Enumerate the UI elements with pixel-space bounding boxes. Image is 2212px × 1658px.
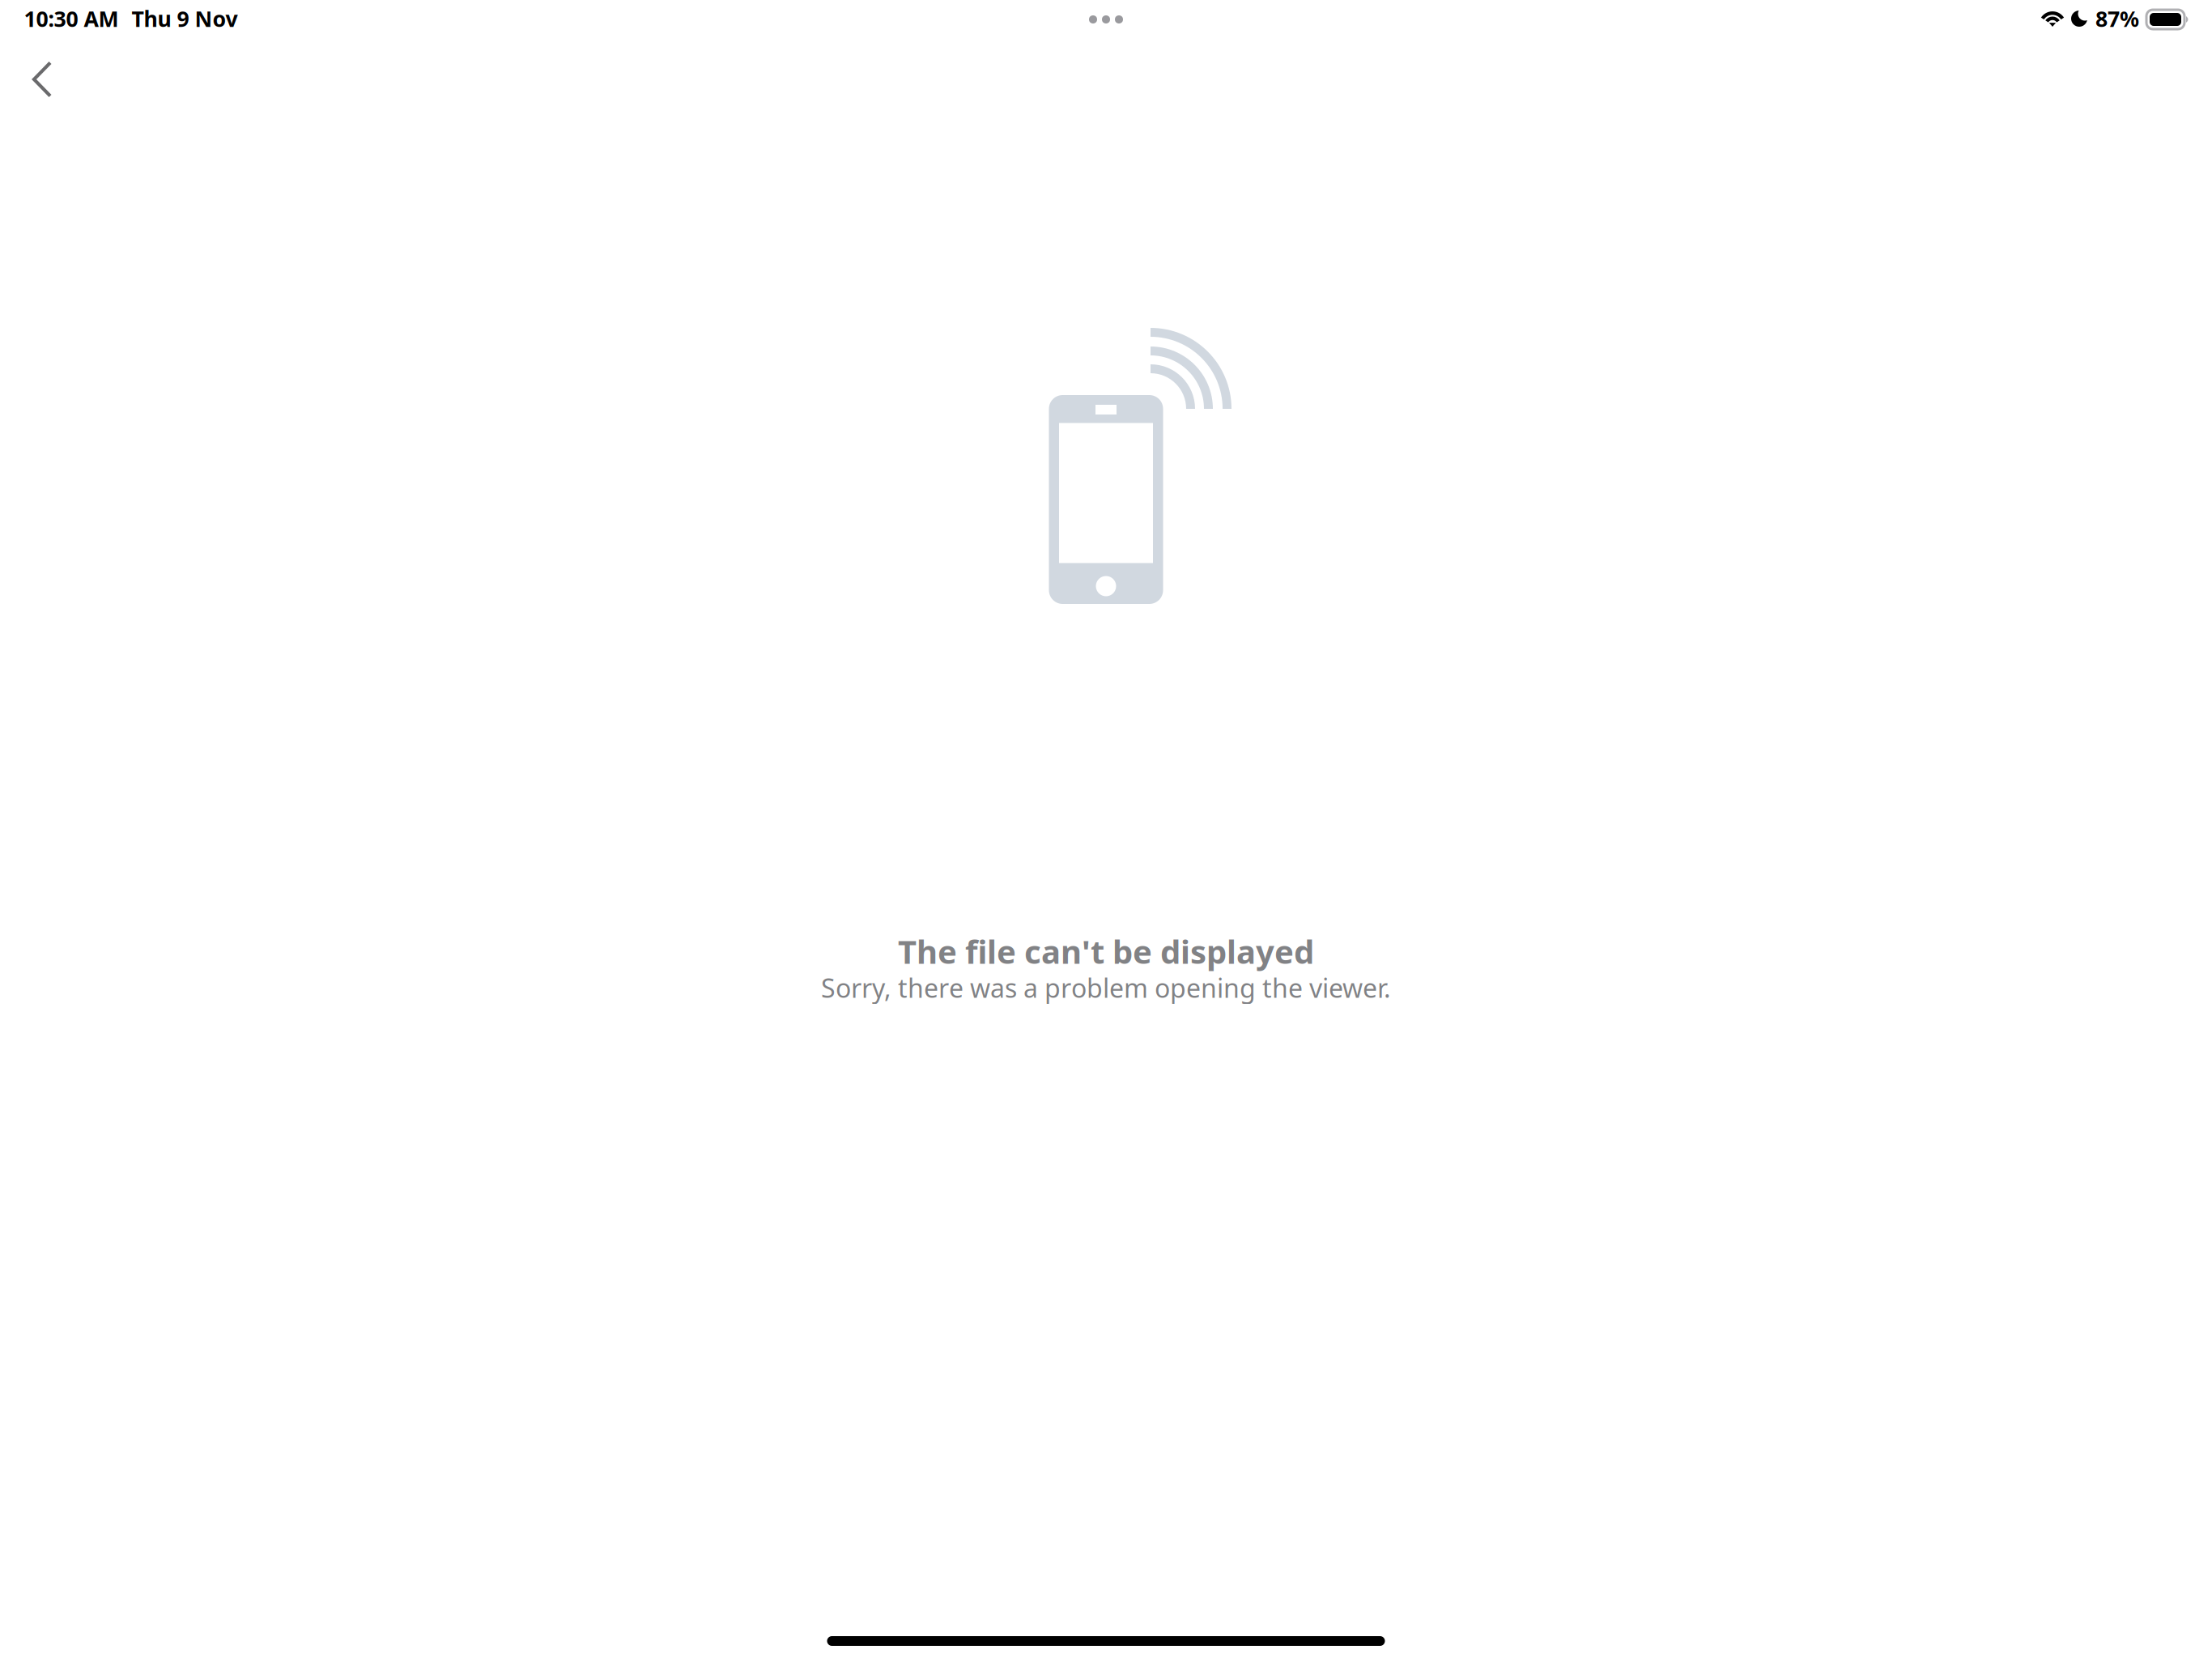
button[interactable]: Multitasking controls	[1065, 4, 1147, 35]
staticText: Sorry, there was a problem opening the v…	[821, 971, 1391, 1005]
button[interactable]: Back	[6, 36, 78, 123]
staticText: The file can't be displayed	[898, 930, 1314, 973]
staticText: 10:30 AM	[24, 4, 119, 33]
staticText: 87%	[2095, 4, 2139, 33]
staticText: Thu 9 Nov	[132, 4, 238, 33]
